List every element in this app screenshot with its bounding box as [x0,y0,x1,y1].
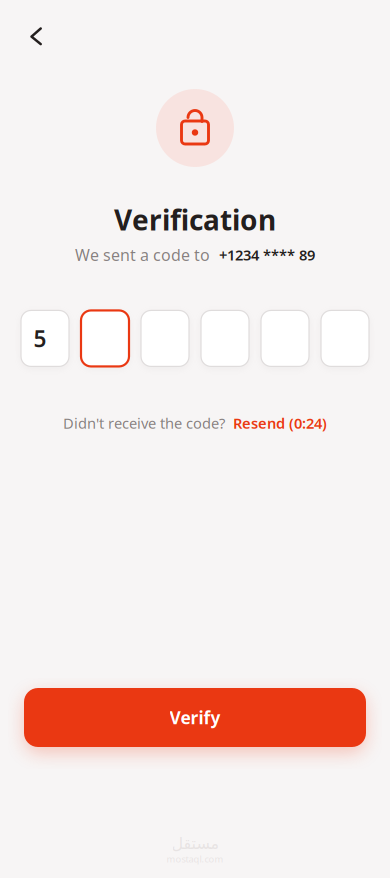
button[interactable]: Code digit 2 [81,310,129,366]
staticText: Didn't receive the code? [63,413,225,433]
button[interactable]: Code digit 1 [21,310,69,366]
staticText: +1234 **** 89 [219,245,315,265]
button[interactable]: Back [13,15,57,57]
staticText: Verify [169,706,220,729]
button[interactable]: Verify [24,688,366,747]
staticText: mostaql.com [166,853,223,865]
button[interactable]: Code digit 5 [261,310,309,366]
staticText: مستقل [171,834,219,853]
button[interactable]: Code digit 3 [141,310,189,366]
button[interactable]: Resend (0:24) [233,413,327,433]
staticText: Verification [114,201,276,238]
button[interactable]: Code digit 6 [321,310,369,366]
staticText: Resend (0:24) [233,413,327,433]
staticText: We sent a code to [75,244,210,265]
staticText: 5 [33,323,46,353]
button[interactable]: Code digit 4 [201,310,249,366]
